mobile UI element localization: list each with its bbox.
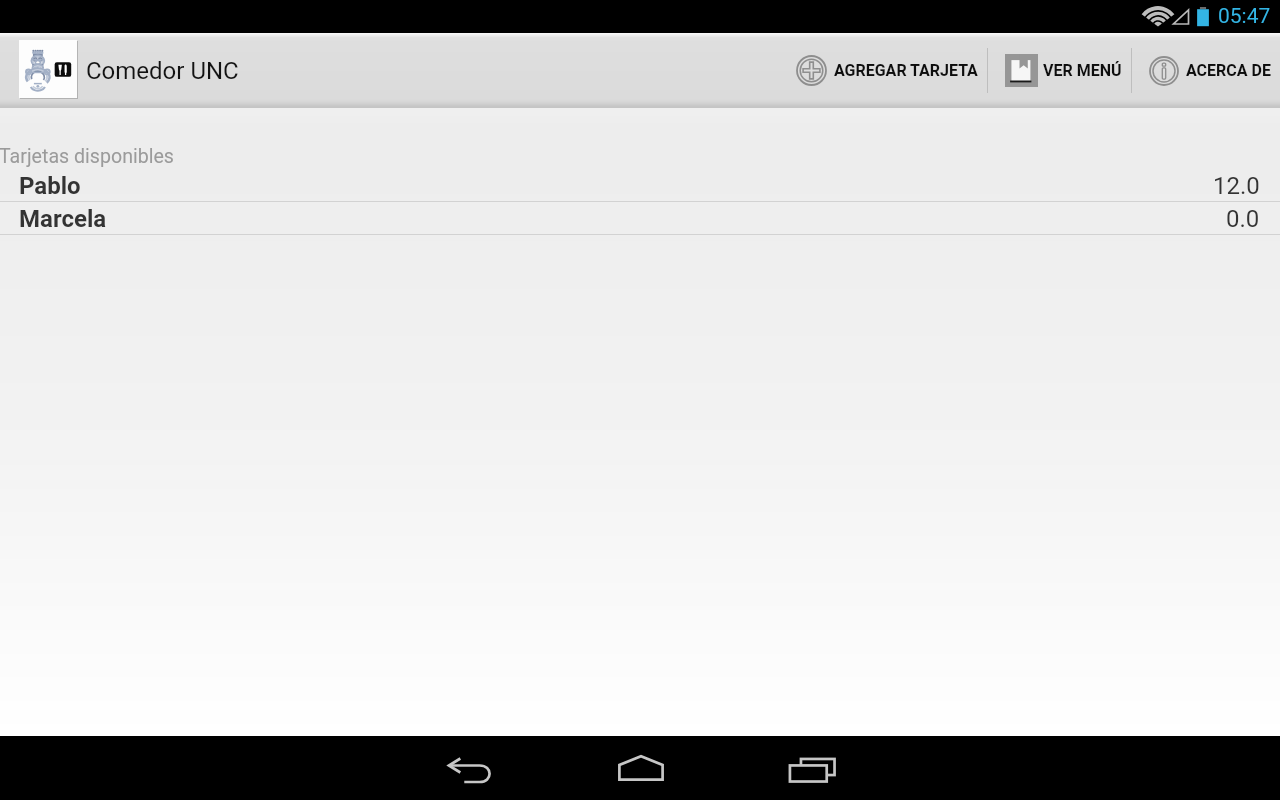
- button[interactable]: Recent apps: [726, 736, 897, 800]
- staticText: VER MENÚ: [1043, 61, 1122, 80]
- staticText: 0.0: [1226, 205, 1260, 233]
- button[interactable]: Ver menú: [988, 33, 1131, 108]
- button[interactable]: Home: [555, 736, 726, 800]
- staticText: AGREGAR TARJETA: [834, 61, 978, 80]
- button[interactable]: Pablo: [0, 169, 1280, 202]
- other: Ver menú: [1005, 54, 1038, 87]
- other: Agregar tarjeta: [796, 55, 827, 86]
- staticText: Pablo: [19, 172, 81, 200]
- staticText: 05:47: [1218, 4, 1271, 29]
- other: Acerca de: [1149, 56, 1179, 86]
- staticText: Comedor UNC: [86, 57, 239, 85]
- button[interactable]: Acerca de: [1132, 33, 1280, 108]
- button[interactable]: Agregar tarjeta: [779, 33, 987, 108]
- staticText: 12.0: [1213, 172, 1260, 200]
- staticText: Tarjetas disponibles: [0, 145, 174, 168]
- button[interactable]: Marcela: [0, 202, 1280, 235]
- button[interactable]: Back: [384, 736, 555, 800]
- button[interactable]: Comedor UNC: [0, 33, 247, 108]
- staticText: ACERCA DE: [1186, 61, 1271, 80]
- staticText: Marcela: [19, 205, 107, 233]
